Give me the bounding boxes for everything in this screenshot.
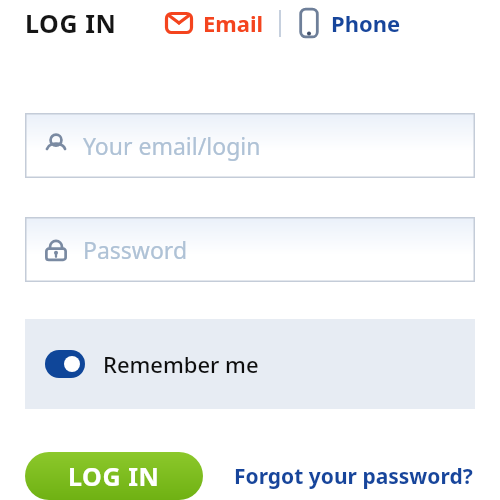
staticText: LOG IN bbox=[68, 459, 160, 493]
other: Email login bbox=[164, 9, 194, 37]
staticText: Forgot your password? bbox=[234, 462, 473, 491]
button[interactable]: LOG IN bbox=[25, 452, 203, 500]
other: Phone login bbox=[296, 6, 322, 40]
staticText: Password bbox=[83, 234, 188, 265]
staticText: LOG IN bbox=[25, 6, 117, 40]
staticText: Remember me bbox=[103, 349, 259, 379]
staticText: Email bbox=[203, 8, 264, 38]
staticText: Your email/login bbox=[83, 130, 261, 161]
button[interactable]: Forgot your password? bbox=[232, 460, 475, 493]
button[interactable]: Your email/login bbox=[25, 113, 475, 178]
button[interactable]: Email login bbox=[162, 5, 266, 41]
button[interactable]: Password bbox=[25, 217, 475, 282]
staticText: Phone bbox=[331, 8, 401, 38]
button[interactable]: Remember me bbox=[25, 319, 475, 409]
button[interactable]: Phone login bbox=[294, 3, 403, 43]
